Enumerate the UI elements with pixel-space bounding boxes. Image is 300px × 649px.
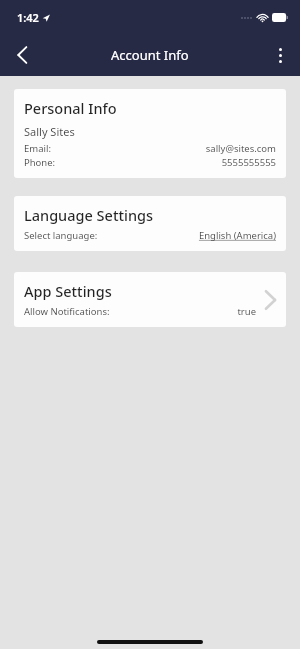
staticText: 5555555555 bbox=[221, 156, 276, 169]
staticText: Language Settings bbox=[24, 205, 154, 225]
staticText: Select language: bbox=[24, 229, 98, 242]
button[interactable]: Personal Info bbox=[14, 89, 286, 178]
staticText: Phone: bbox=[24, 156, 56, 169]
button[interactable]: Language Settings bbox=[14, 196, 286, 251]
staticText: App Settings bbox=[24, 281, 112, 301]
button[interactable]: Back bbox=[0, 34, 44, 76]
staticText: Sally Sites bbox=[24, 124, 75, 139]
staticText: true bbox=[237, 305, 256, 318]
button[interactable]: App Settings bbox=[14, 272, 286, 327]
button[interactable]: More options bbox=[260, 35, 300, 75]
staticText: 1:42 bbox=[17, 10, 39, 25]
staticText: Personal Info bbox=[24, 98, 117, 118]
staticText: sally@sites.com bbox=[205, 142, 276, 155]
staticText: Email: bbox=[24, 142, 51, 155]
staticText: English (America) bbox=[198, 229, 276, 242]
staticText: Allow Notifications: bbox=[24, 305, 110, 318]
staticText: Account Info bbox=[111, 46, 189, 64]
